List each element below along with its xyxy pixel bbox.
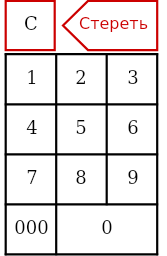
staticText: 3 (127, 67, 139, 88)
staticText: 6 (127, 117, 139, 138)
button[interactable]: 0 (56, 204, 157, 254)
button[interactable]: 8 (56, 154, 106, 204)
button[interactable]: 2 (56, 54, 106, 104)
button[interactable]: 4 (6, 104, 57, 154)
staticText: 4 (26, 117, 38, 138)
button[interactable]: 000 (6, 204, 57, 254)
button[interactable]: 6 (107, 104, 158, 154)
staticText: 5 (75, 117, 87, 138)
button[interactable]: Очистить (5, 0, 56, 51)
button[interactable]: Стереть (62, 0, 158, 51)
staticText: 0 (101, 217, 113, 238)
button[interactable]: 5 (56, 104, 106, 154)
button[interactable]: 7 (6, 154, 57, 204)
button[interactable]: 1 (6, 54, 57, 104)
staticText: 1 (26, 67, 38, 88)
staticText: 2 (75, 67, 87, 88)
staticText: Стереть (79, 14, 149, 33)
button[interactable]: 9 (107, 154, 158, 204)
staticText: 8 (75, 167, 87, 188)
staticText: 7 (26, 167, 38, 188)
staticText: 000 (14, 217, 49, 238)
staticText: C (24, 13, 38, 34)
button[interactable]: 3 (107, 54, 158, 104)
staticText: 9 (127, 167, 139, 188)
